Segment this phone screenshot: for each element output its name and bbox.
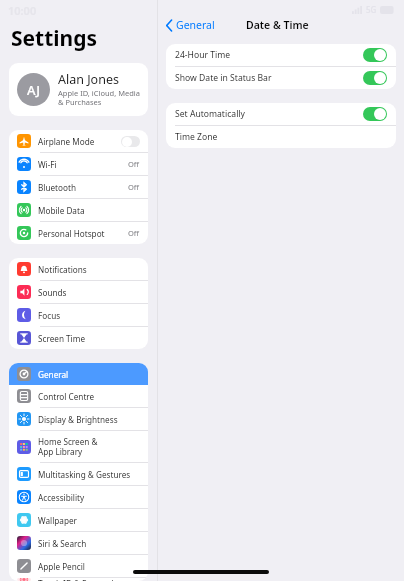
button[interactable]: Notifications: [9, 258, 148, 280]
staticText: Off: [128, 159, 140, 169]
staticText: Airplane Mode: [38, 136, 121, 147]
button[interactable]: [363, 107, 387, 121]
staticText: Sounds: [38, 287, 140, 298]
staticText: Accessibility: [38, 492, 140, 503]
button[interactable]: Wallpaper: [9, 509, 148, 531]
staticText: Focus: [38, 310, 140, 321]
button[interactable]: AJ: [9, 63, 148, 116]
staticText: Apple ID, iCloud, Media & Purchases: [58, 88, 140, 108]
button[interactable]: Wi-Fi: [9, 153, 148, 175]
button[interactable]: Bluetooth: [9, 176, 148, 198]
button[interactable]: Airplane Mode: [9, 130, 148, 152]
staticText: Show Date in Status Bar: [175, 72, 363, 84]
staticText: Personal Hotspot: [38, 228, 128, 239]
staticText: Multitasking & Gestures: [38, 469, 140, 480]
button[interactable]: Set Automatically: [166, 103, 396, 125]
staticText: Screen Time: [38, 333, 140, 344]
staticText: Date & Time: [246, 18, 309, 32]
button[interactable]: [363, 48, 387, 62]
staticText: Home Screen & App Library: [38, 436, 140, 458]
staticText: Bluetooth: [38, 182, 128, 193]
staticText: Mobile Data: [38, 205, 140, 216]
staticText: 10:00: [8, 3, 37, 18]
staticText: Time Zone: [175, 131, 387, 143]
staticText: Control Centre: [38, 391, 140, 402]
staticText: Alan Jones: [58, 71, 119, 88]
staticText: Wallpaper: [38, 515, 140, 526]
button[interactable]: Home Screen & App Library: [9, 431, 148, 462]
staticText: Notifications: [38, 264, 140, 275]
button[interactable]: [363, 71, 387, 85]
staticText: Apple Pencil: [38, 561, 140, 572]
staticText: Set Automatically: [175, 108, 363, 120]
button[interactable]: Sounds: [9, 281, 148, 303]
staticText: 5G: [366, 4, 377, 15]
button[interactable]: Siri & Search: [9, 532, 148, 554]
button[interactable]: Control Centre: [9, 385, 148, 407]
staticText: AJ: [27, 81, 40, 99]
staticText: Wi-Fi: [38, 159, 128, 170]
staticText: Settings: [11, 24, 98, 53]
button[interactable]: Show Date in Status Bar: [166, 67, 396, 89]
button[interactable]: Accessibility: [9, 486, 148, 508]
button[interactable]: Screen Time: [9, 327, 148, 349]
staticText: Off: [128, 182, 140, 192]
button[interactable]: Time Zone: [166, 126, 396, 148]
staticText: Display & Brightness: [38, 414, 140, 425]
button[interactable]: 24-Hour Time: [166, 44, 396, 66]
staticText: 24-Hour Time: [175, 49, 363, 61]
staticText: General: [176, 18, 215, 32]
button[interactable]: [121, 136, 140, 147]
button[interactable]: Touch ID & Passcode: [9, 578, 148, 581]
button[interactable]: Apple Pencil: [9, 555, 148, 577]
button[interactable]: Personal Hotspot: [9, 222, 148, 244]
button[interactable]: Focus: [9, 304, 148, 326]
staticText: Siri & Search: [38, 538, 140, 549]
button[interactable]: Display & Brightness: [9, 408, 148, 430]
other: Back: [166, 20, 173, 31]
button[interactable]: General: [9, 363, 148, 385]
button[interactable]: Back: [164, 17, 217, 33]
staticText: General: [38, 369, 140, 380]
staticText: Touch ID & Passcode: [38, 578, 140, 581]
button[interactable]: Mobile Data: [9, 199, 148, 221]
staticText: Off: [128, 228, 140, 238]
button[interactable]: Multitasking & Gestures: [9, 463, 148, 485]
